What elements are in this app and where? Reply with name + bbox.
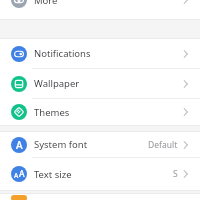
staticText: Notifications	[34, 47, 91, 60]
button[interactable]: A	[0, 132, 200, 157]
staticText: S	[173, 168, 178, 180]
staticText: A	[19, 168, 25, 180]
staticText: Themes	[34, 106, 70, 119]
staticText: A	[16, 138, 23, 152]
button[interactable]: Wallpaper	[0, 69, 200, 98]
staticText: A	[14, 171, 19, 180]
button[interactable]: Notifications	[0, 39, 200, 68]
button[interactable]	[0, 194, 200, 200]
button[interactable]: More	[0, 0, 200, 9]
staticText: Default	[148, 139, 178, 151]
staticText: System font	[34, 138, 88, 151]
staticText: Wallpaper	[34, 77, 80, 90]
staticText: Text size	[34, 168, 72, 181]
staticText: More	[34, 0, 58, 7]
button[interactable]: Themes	[0, 99, 200, 125]
button[interactable]: A	[0, 158, 200, 190]
